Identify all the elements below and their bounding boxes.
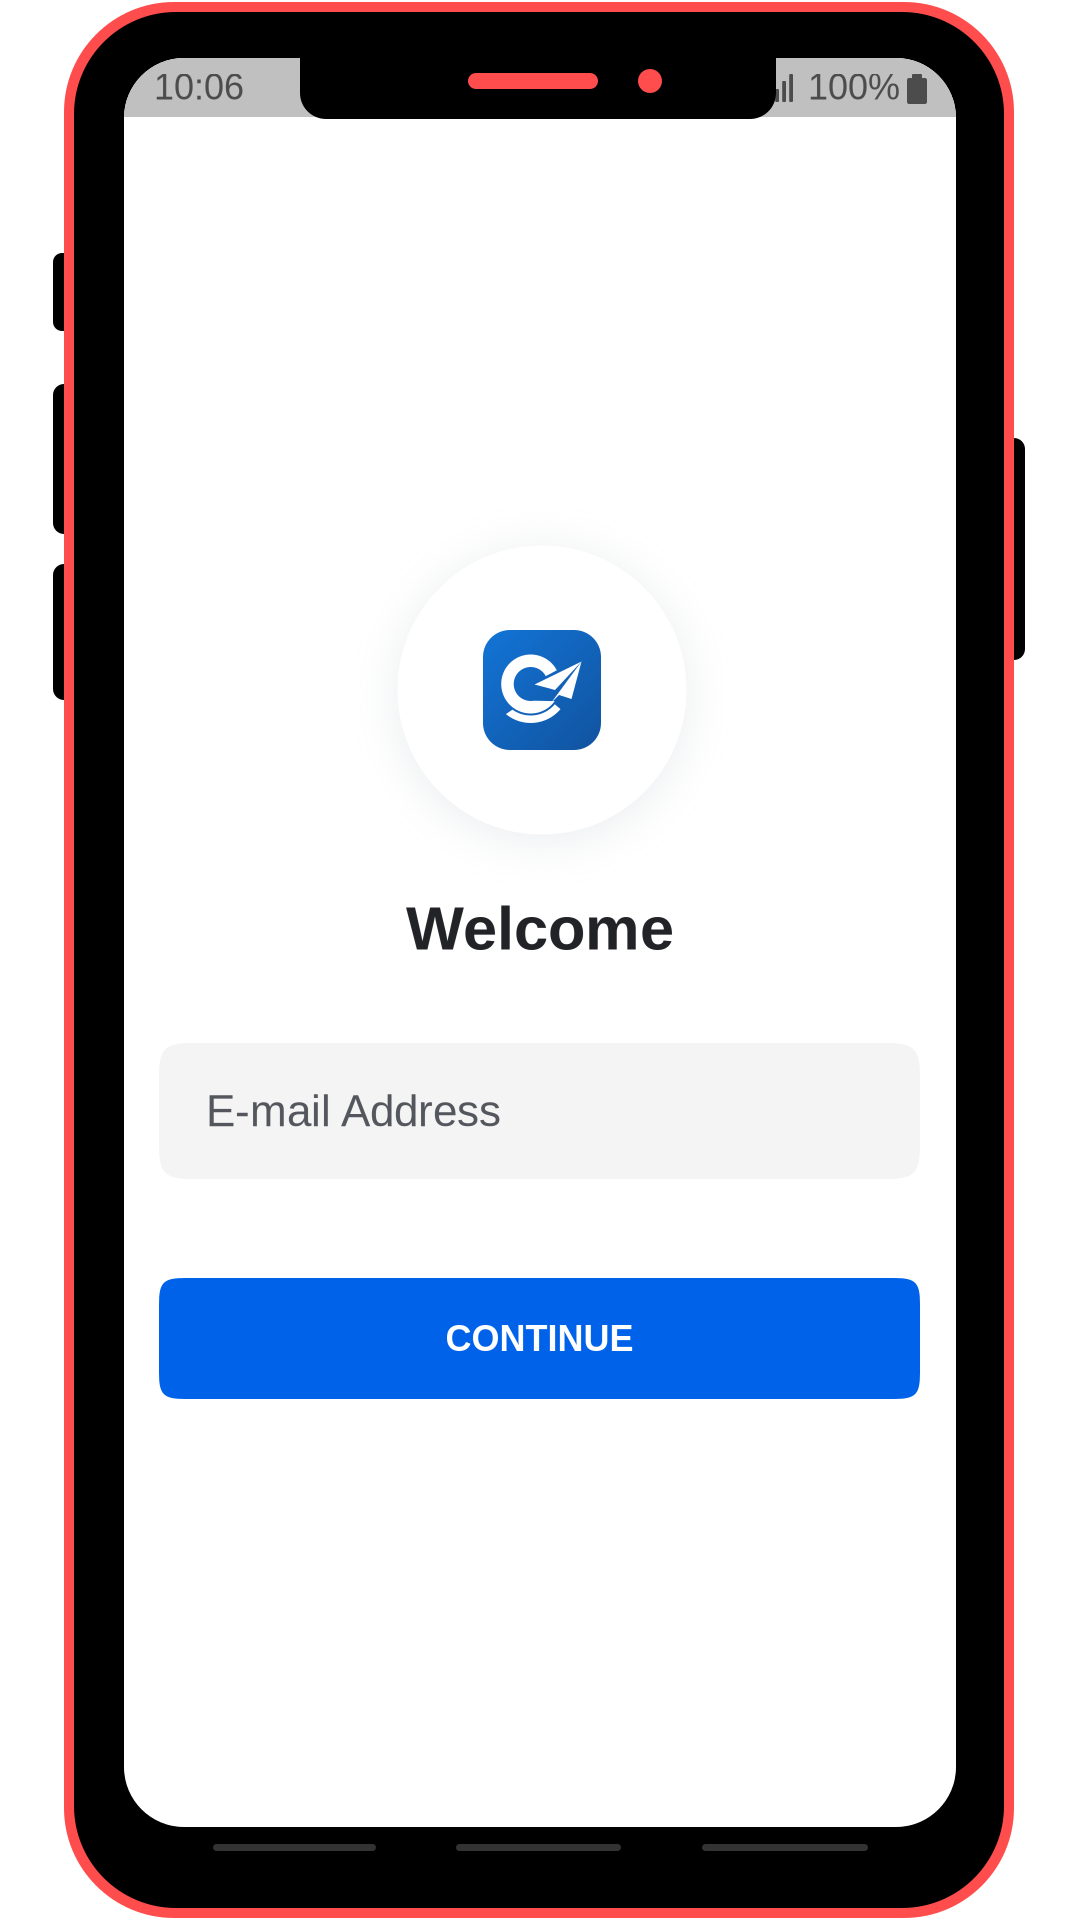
staticText: 10:06 <box>154 67 244 107</box>
staticText: E-mail Address <box>206 1086 501 1136</box>
staticText: 100% <box>808 67 900 107</box>
staticText: Welcome <box>406 894 674 962</box>
button[interactable]: CONTINUE <box>159 1278 920 1399</box>
staticText: CONTINUE <box>445 1318 633 1359</box>
